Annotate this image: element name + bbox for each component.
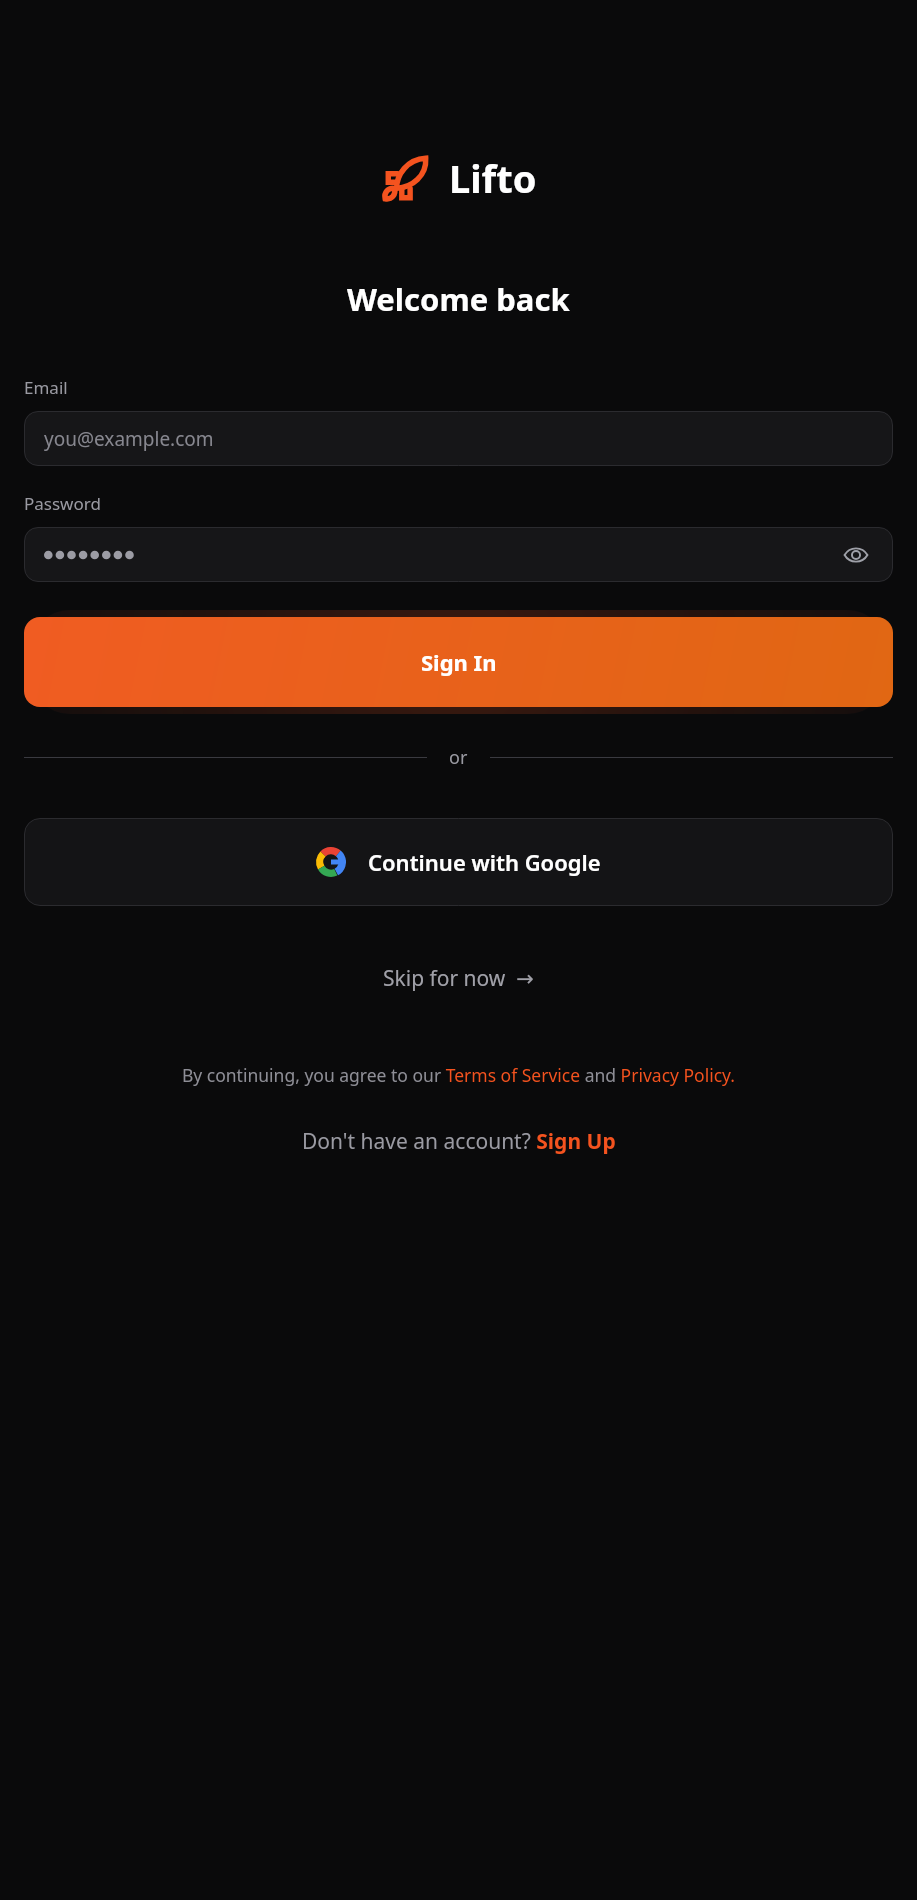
button[interactable]: Don't have an account? Sign Up bbox=[286, 1119, 632, 1164]
button[interactable]: you@example.com bbox=[24, 411, 893, 466]
staticText: Skip for now → bbox=[383, 964, 534, 993]
button[interactable]: Skip for now → bbox=[363, 952, 554, 1005]
staticText: you@example.com bbox=[44, 426, 214, 452]
staticText: Email bbox=[24, 376, 68, 399]
button[interactable]: By continuing, you agree to our Terms of… bbox=[24, 1063, 893, 1087]
button[interactable]: Continue with Google bbox=[24, 818, 893, 906]
staticText: Don't have an account? Sign Up bbox=[302, 1127, 616, 1156]
staticText: or bbox=[449, 745, 468, 770]
staticText: Sign In bbox=[421, 647, 497, 677]
staticText: Welcome back bbox=[347, 278, 570, 320]
button[interactable]: Show password bbox=[24, 527, 893, 582]
staticText: Continue with Google bbox=[368, 847, 601, 877]
staticText: Lifto bbox=[449, 152, 537, 204]
staticText: Password bbox=[24, 492, 101, 515]
button[interactable]: Sign In bbox=[24, 617, 893, 707]
button[interactable]: Show password bbox=[839, 538, 873, 572]
